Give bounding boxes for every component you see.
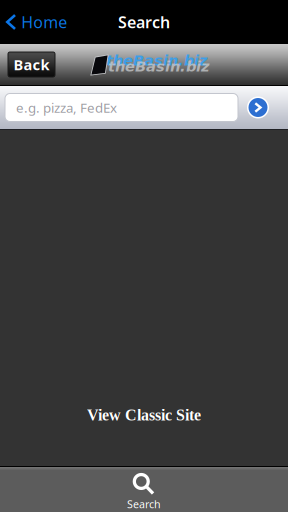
button[interactable]: Search xyxy=(111,464,177,512)
button[interactable]: Go xyxy=(247,96,269,118)
staticText: theBasin.biz xyxy=(108,58,210,75)
staticText: Search xyxy=(127,497,161,511)
staticText: e.g. pizza, FedEx xyxy=(16,99,117,116)
button[interactable]: Back xyxy=(8,52,55,77)
staticText: Home xyxy=(21,11,67,33)
staticText: View Classic Site xyxy=(87,406,201,424)
staticText: Back xyxy=(13,55,49,74)
staticText: theBasin.biz xyxy=(106,52,208,69)
button[interactable]: Search field xyxy=(5,93,238,121)
staticText: Search xyxy=(118,11,170,33)
button[interactable]: Home xyxy=(0,3,75,41)
button[interactable]: View Classic Site xyxy=(77,402,211,428)
